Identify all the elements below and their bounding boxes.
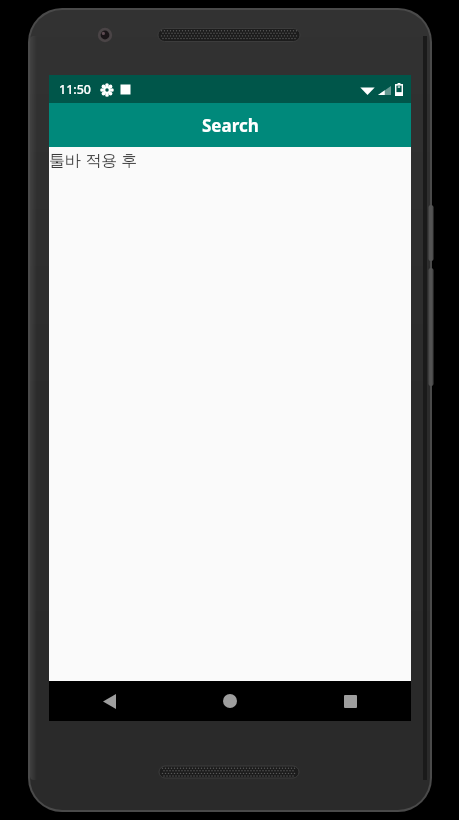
staticText: 11:50 [59, 81, 92, 98]
button[interactable]: Back [49, 681, 169, 721]
button[interactable]: Search [49, 103, 411, 147]
button[interactable]: Recent apps [290, 681, 411, 721]
staticText: Search [202, 114, 259, 137]
staticText: 툴바 적용 후 [49, 149, 138, 171]
button[interactable]: Home [169, 681, 290, 721]
